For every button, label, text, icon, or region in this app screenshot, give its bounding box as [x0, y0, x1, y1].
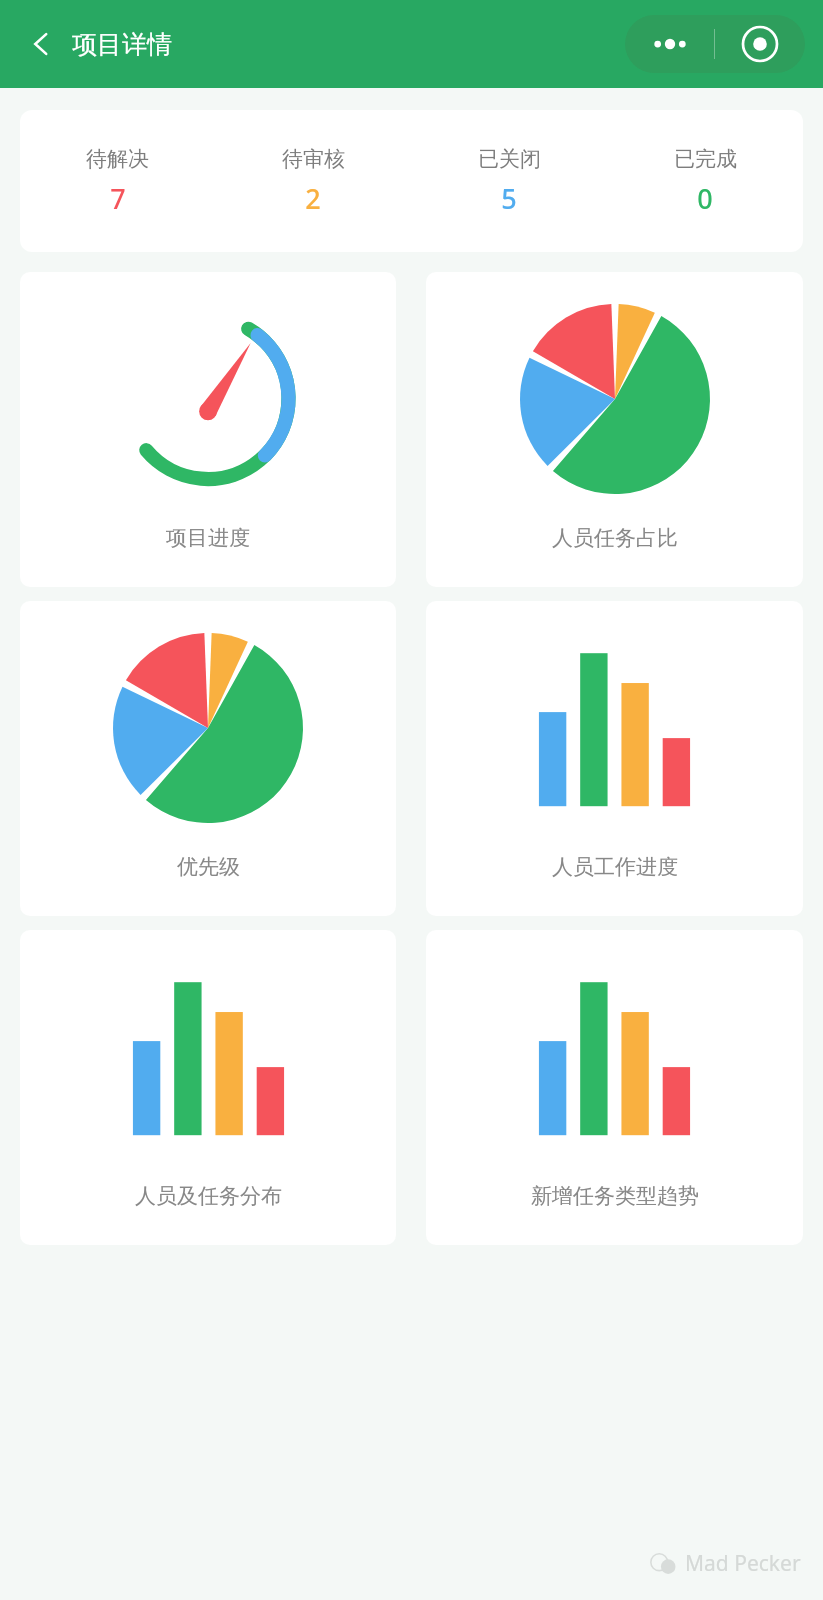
staticText: 已完成	[674, 146, 737, 172]
button[interactable]: 已关闭	[411, 146, 607, 217]
staticText: 人员任务占比	[552, 525, 678, 551]
staticText: 待解决	[86, 146, 149, 172]
button[interactable]: 项目进度	[20, 272, 396, 587]
button[interactable]: 待解决	[20, 146, 215, 217]
button[interactable]: Close	[715, 15, 805, 73]
staticText: 优先级	[177, 854, 240, 880]
staticText: 2	[305, 180, 321, 217]
staticText: 待审核	[282, 146, 345, 172]
staticText: 人员及任务分布	[135, 1183, 282, 1209]
button[interactable]: 待审核	[215, 146, 411, 217]
staticText: 7	[110, 180, 126, 217]
button[interactable]: 待解决	[20, 110, 803, 252]
staticText: 已关闭	[478, 146, 541, 172]
button[interactable]: 人员及任务分布	[20, 930, 396, 1245]
button[interactable]: 优先级	[20, 601, 396, 916]
button[interactable]: Back	[18, 21, 64, 67]
button[interactable]: More	[625, 15, 714, 73]
button[interactable]: 新增任务类型趋势	[426, 930, 803, 1245]
staticText: 人员工作进度	[552, 854, 678, 880]
button[interactable]: 已完成	[607, 146, 803, 217]
staticText: 新增任务类型趋势	[531, 1183, 699, 1209]
staticText: 0	[697, 180, 713, 217]
staticText: 5	[501, 180, 517, 217]
staticText: 项目详情	[72, 29, 172, 60]
staticText: Mad Pecker	[685, 1549, 801, 1578]
button[interactable]: 人员任务占比	[426, 272, 803, 587]
button[interactable]: 人员工作进度	[426, 601, 803, 916]
staticText: 项目进度	[166, 525, 250, 551]
